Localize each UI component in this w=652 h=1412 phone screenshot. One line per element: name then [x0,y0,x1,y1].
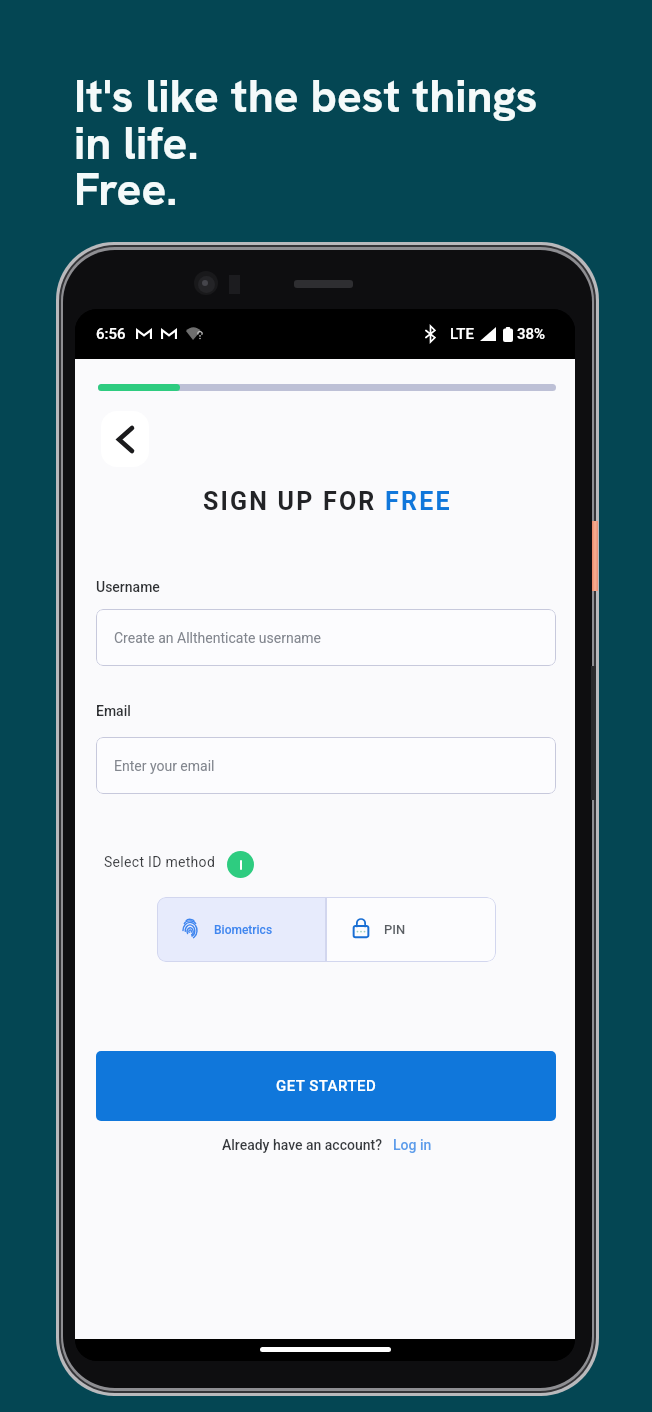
staticText: Email [96,703,131,719]
staticText: 38% [517,325,546,343]
button[interactable]: Create an Allthenticate username [96,609,556,666]
staticText: Biometrics [214,923,273,937]
staticText: Log in [393,1137,432,1153]
button[interactable]: PIN [326,897,496,962]
staticText: Username [96,579,160,595]
staticText: Select ID method [104,854,216,870]
button[interactable]: Enter your email [96,737,556,794]
staticText: Create an Allthenticate username [114,630,322,646]
button[interactable]: GET STARTED [96,1051,556,1121]
staticText: Already have an account? [222,1137,382,1153]
button[interactable]: Biometrics [157,897,326,962]
staticText: SIGN UP FOR FREE [203,487,452,516]
button[interactable]: Back [101,411,149,467]
button[interactable]: Info [227,851,254,878]
staticText: 6:56 [96,325,126,343]
staticText: PIN [384,922,406,937]
button[interactable]: Log in [393,1137,432,1153]
staticText: Enter your email [114,758,215,774]
staticText: LTE [450,325,474,343]
staticText: GET STARTED [276,1077,377,1095]
staticText: It's like the best things in life. Free. [74,66,538,218]
